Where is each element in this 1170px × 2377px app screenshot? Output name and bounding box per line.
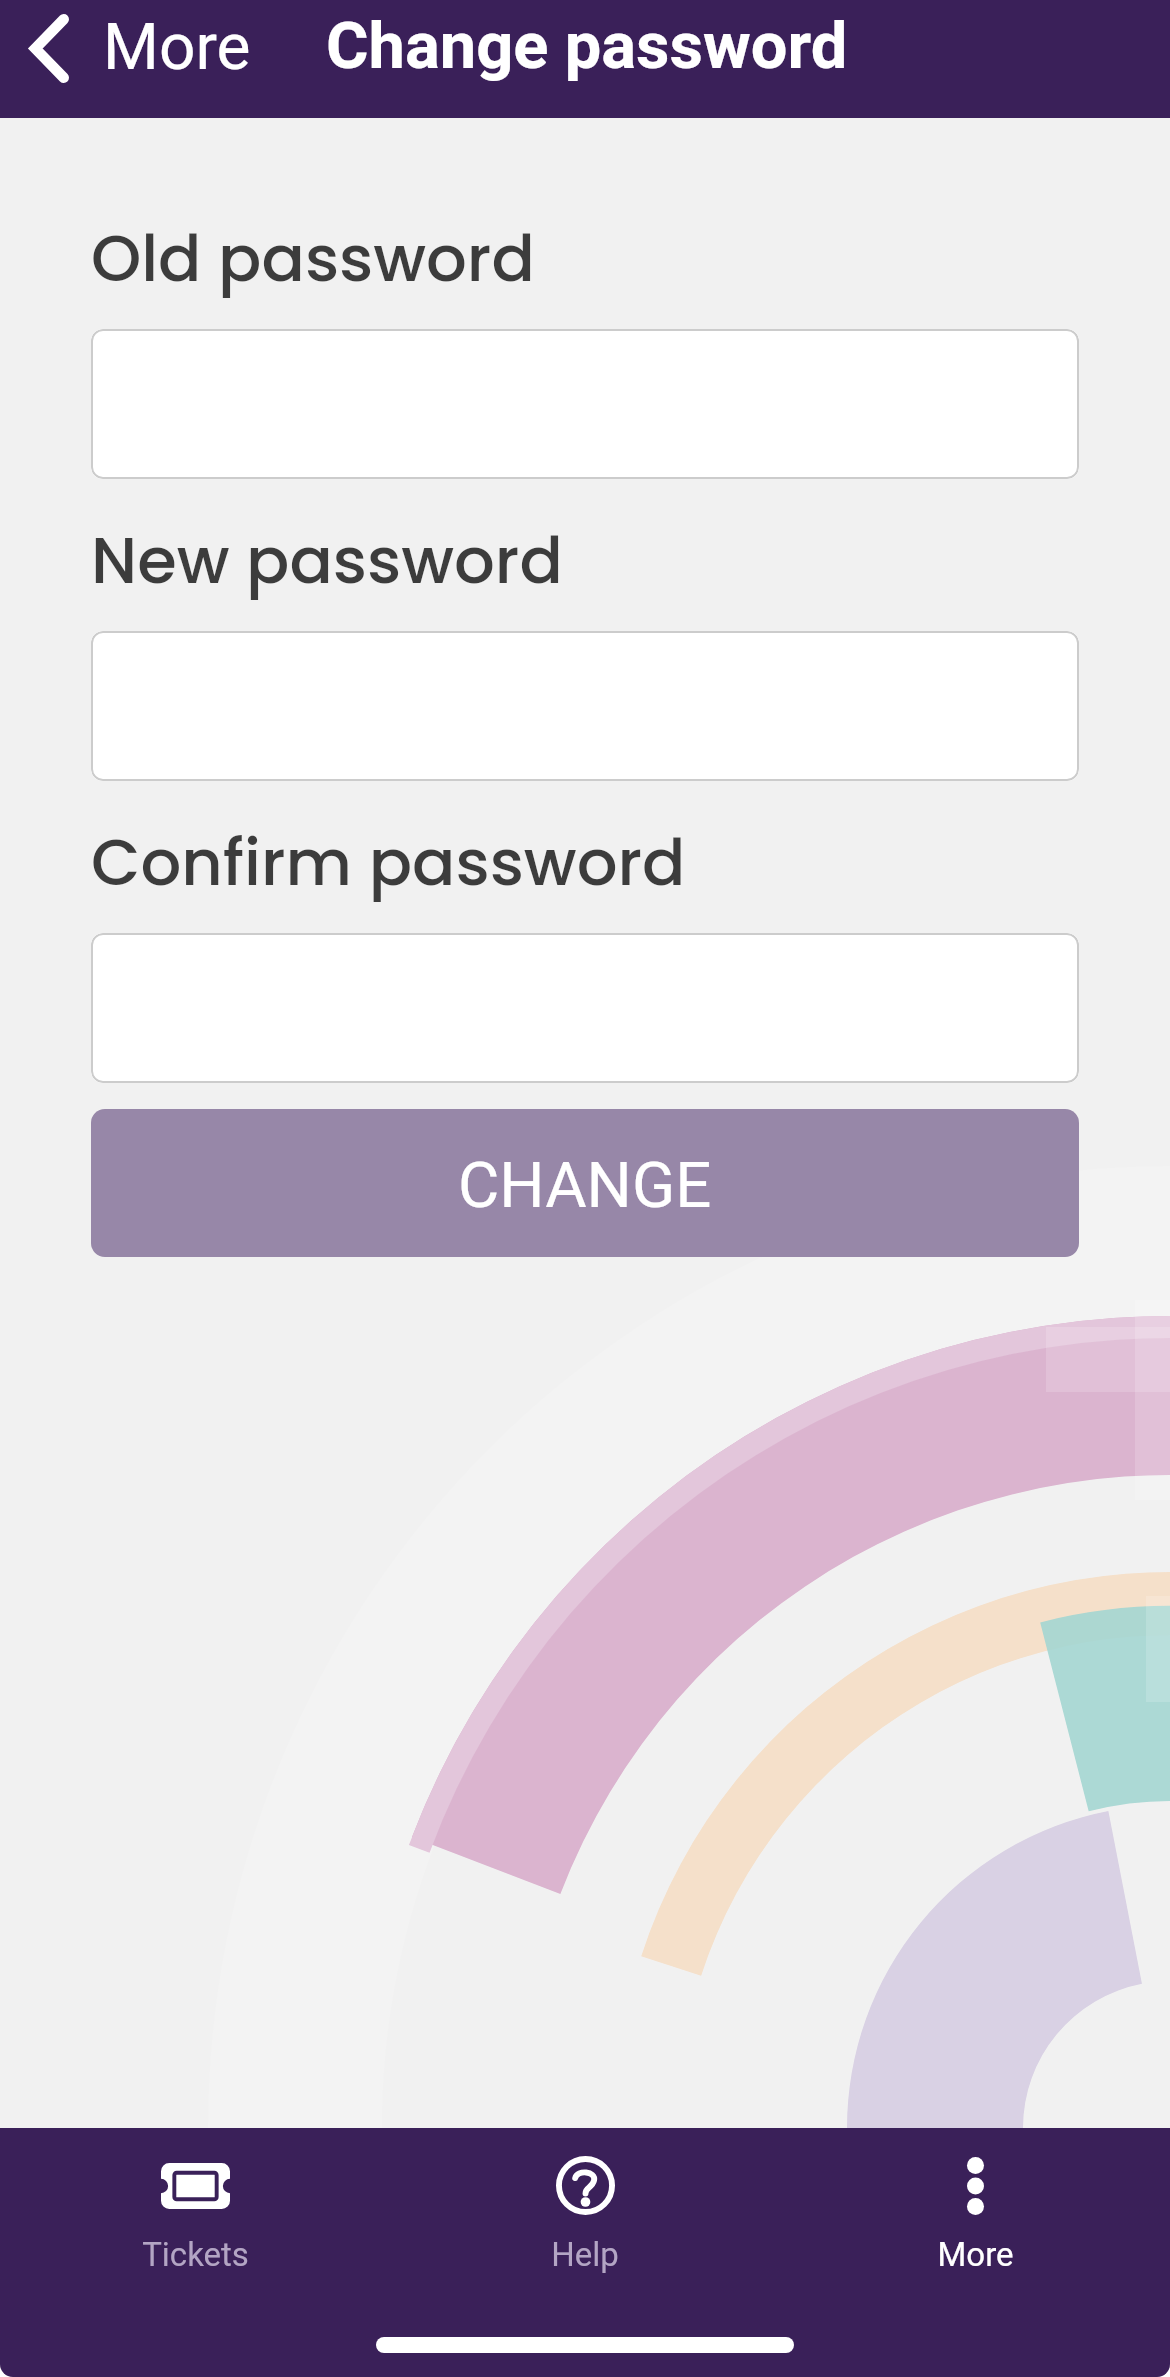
staticText: New password — [91, 516, 563, 606]
other: Tickets — [161, 2163, 230, 2209]
button[interactable] — [91, 631, 1079, 781]
staticText: Help — [551, 2235, 619, 2274]
staticText: CHANGE — [458, 1148, 712, 1222]
other: Back — [30, 14, 69, 83]
staticText: More — [103, 10, 251, 85]
staticText: Old password — [91, 214, 535, 304]
other: Help — [556, 2156, 615, 2215]
other: More — [967, 2157, 984, 2215]
staticText: Tickets — [142, 2235, 249, 2274]
button[interactable]: More — [780, 2156, 1170, 2274]
button[interactable] — [91, 329, 1079, 479]
button[interactable]: Tickets — [0, 2156, 390, 2274]
staticText: Change password — [326, 8, 848, 84]
staticText: Confirm password — [91, 818, 686, 908]
button[interactable]: CHANGE — [91, 1109, 1079, 1257]
staticText: More — [937, 2235, 1014, 2274]
button[interactable] — [91, 933, 1079, 1083]
button[interactable]: Back — [16, 0, 267, 118]
button[interactable]: Help — [390, 2156, 780, 2274]
